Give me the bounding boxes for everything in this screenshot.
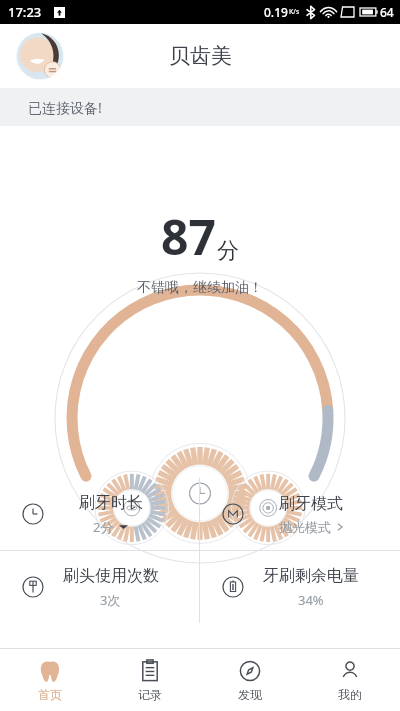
staticText: 牙刷剩余电量: [263, 566, 359, 586]
staticText: 刷牙模式: [279, 494, 343, 514]
staticText: 刷头使用次数: [63, 566, 159, 586]
button[interactable]: 记录: [100, 659, 200, 702]
button[interactable]: Profile: [16, 32, 64, 80]
staticText: 0.19: [264, 4, 288, 20]
staticText: 我的: [338, 687, 362, 702]
staticText: 已连接设备!: [28, 98, 102, 117]
staticText: 64: [380, 4, 394, 20]
staticText: K/s: [289, 7, 300, 17]
staticText: 2分: [93, 518, 114, 536]
staticText: 分: [217, 237, 239, 265]
staticText: 贝齿美: [169, 43, 232, 69]
button[interactable]: 发现: [200, 659, 300, 702]
staticText: 87: [161, 204, 216, 269]
button[interactable]: 刷牙模式: [200, 478, 400, 550]
button[interactable]: 首页: [0, 659, 100, 702]
staticText: 不错哦，继续加油！: [137, 279, 263, 297]
button[interactable]: 我的: [300, 659, 400, 702]
staticText: 首页: [38, 687, 62, 702]
button[interactable]: 刷牙时长: [0, 478, 199, 550]
staticText: 记录: [138, 687, 162, 702]
staticText: 17:23: [8, 3, 42, 21]
button[interactable]: 牙刷剩余电量: [200, 551, 400, 623]
staticText: 抛光模式: [279, 519, 331, 535]
button[interactable]: 刷头使用次数: [0, 551, 199, 623]
staticText: 发现: [238, 687, 262, 702]
staticText: 34%: [298, 591, 324, 609]
staticText: 3次: [100, 591, 121, 609]
staticText: 刷牙时长: [79, 493, 143, 513]
